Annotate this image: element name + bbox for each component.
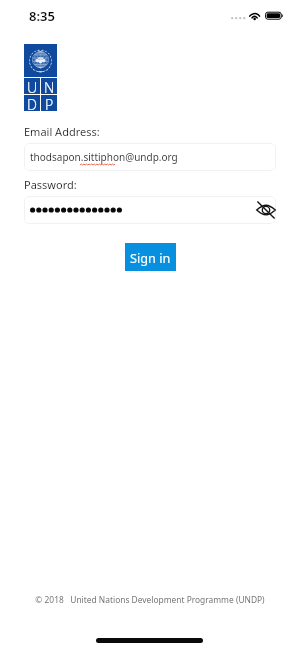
button[interactable]: Password field — [24, 196, 276, 224]
staticText: U — [27, 78, 38, 94]
staticText: © 2018 United Nations Development Progra… — [0, 594, 300, 605]
button[interactable]: Sign in — [125, 243, 176, 271]
staticText: Email Address: — [24, 124, 100, 139]
staticText: D — [27, 95, 37, 111]
button[interactable]: thodsapon.sittiphon@undp.org — [24, 143, 276, 171]
staticText: 8:35 — [29, 7, 55, 25]
staticText: Password: — [24, 177, 77, 192]
staticText: Sign in — [130, 249, 171, 266]
button[interactable]: Show password — [253, 197, 279, 223]
staticText: thodsapon.sittiphon@undp.org — [30, 150, 178, 164]
staticText: N — [44, 78, 55, 94]
staticText: P — [45, 95, 54, 111]
